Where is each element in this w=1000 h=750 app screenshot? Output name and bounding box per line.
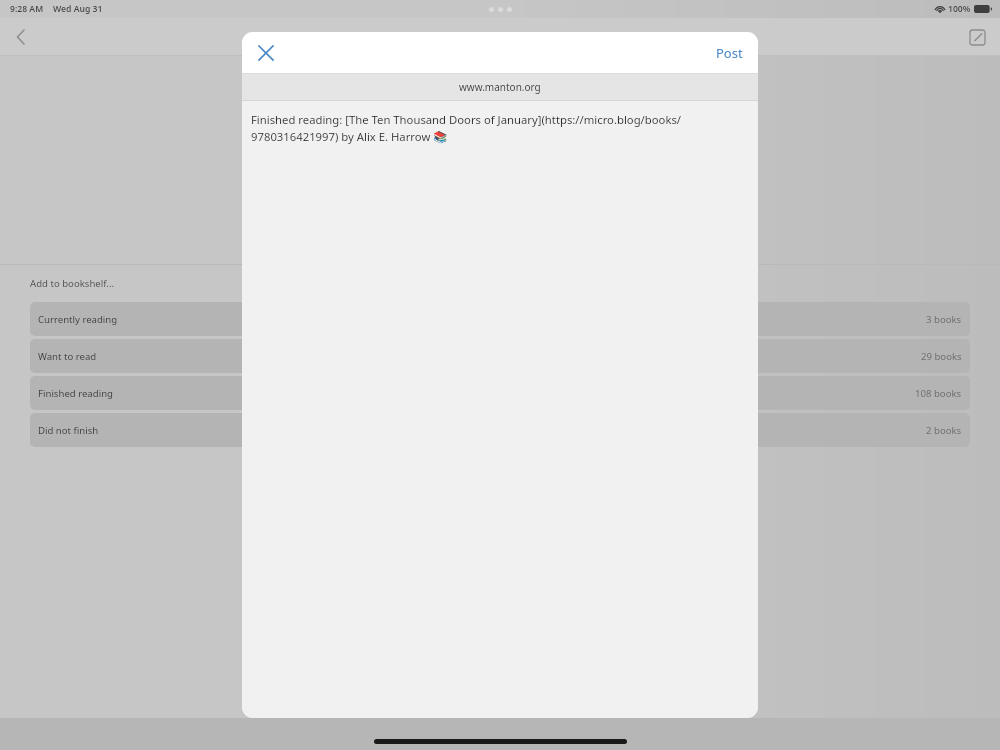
staticText: www.manton.org — [459, 80, 541, 94]
staticText: Did not finish — [38, 424, 99, 437]
button[interactable]: Post — [701, 35, 758, 71]
staticText: Want to read — [38, 350, 97, 363]
staticText: Currently reading — [38, 313, 118, 326]
button[interactable]: Close — [251, 38, 281, 68]
staticText: Wed Aug 31 — [53, 3, 103, 15]
button[interactable]: Currently reading — [30, 302, 970, 336]
button[interactable]: Back — [6, 23, 34, 51]
staticText: 9:28 AM — [10, 3, 44, 15]
button[interactable]: Compose — [963, 23, 991, 51]
staticText: 100% — [948, 3, 971, 15]
staticText: 108 books — [915, 387, 962, 400]
staticText: 3 books — [926, 313, 962, 326]
staticText: Finished reading: [The Ten Thousand Door… — [251, 112, 744, 144]
staticText: 29 books — [921, 350, 962, 363]
button[interactable]: Did not finish — [30, 413, 970, 447]
staticText: Add to bookshelf... — [30, 277, 115, 290]
button[interactable]: Want to read — [30, 339, 970, 373]
staticText: 2 books — [926, 424, 962, 437]
staticText: Finished reading — [38, 387, 113, 400]
staticText: Post — [716, 44, 743, 62]
button[interactable]: Finished reading — [30, 376, 970, 410]
